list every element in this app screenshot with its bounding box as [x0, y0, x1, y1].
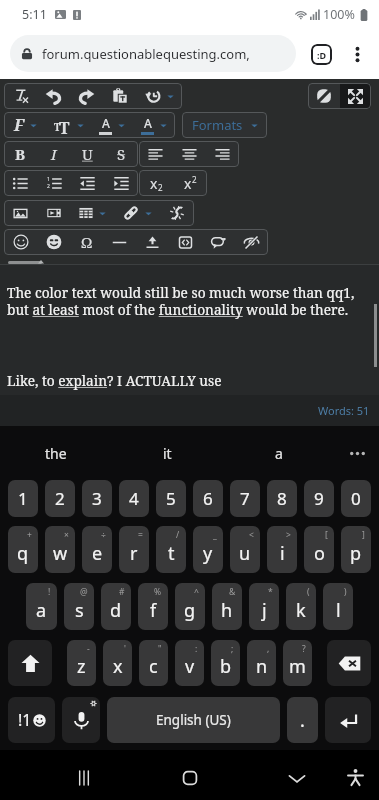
button[interactable]: Editor action	[70, 200, 115, 226]
button[interactable]: 7	[230, 480, 260, 517]
button[interactable]: Voice input	[62, 697, 100, 743]
button[interactable]: [	[304, 526, 334, 573]
button[interactable]: ,	[247, 640, 276, 686]
button[interactable]: Editor action	[136, 83, 182, 109]
button[interactable]: ;	[211, 640, 240, 686]
staticText: the	[45, 444, 67, 463]
button[interactable]: Editor action	[4, 141, 37, 167]
button[interactable]: English (US)	[107, 697, 280, 743]
button[interactable]: 5	[156, 480, 186, 517]
button[interactable]: ÷	[82, 526, 112, 573]
button[interactable]: ]	[341, 526, 371, 573]
button[interactable]: =	[119, 526, 149, 573]
button[interactable]: 1	[8, 480, 38, 517]
button[interactable]: :	[175, 640, 204, 686]
button[interactable]: )	[323, 583, 353, 630]
staticText: 4	[129, 487, 139, 510]
button[interactable]: More options	[341, 38, 373, 70]
button[interactable]: Home	[165, 753, 214, 800]
button[interactable]: 8	[267, 480, 297, 517]
button[interactable]: &	[212, 583, 242, 630]
staticText: 2	[192, 174, 197, 185]
button[interactable]: <	[230, 526, 260, 573]
button[interactable]: Editor action	[37, 170, 71, 196]
button[interactable]: Formats	[182, 112, 267, 138]
button[interactable]: +	[8, 526, 38, 573]
button[interactable]: Editor action	[206, 141, 239, 167]
button[interactable]: Fullscreen	[340, 83, 371, 109]
button[interactable]: -	[67, 640, 96, 686]
staticText: 2	[47, 183, 50, 190]
staticText: ,	[267, 643, 270, 655]
button[interactable]: Editor action	[37, 83, 70, 109]
button[interactable]: /	[156, 526, 186, 573]
button[interactable]: 3	[82, 480, 112, 517]
button[interactable]: Editor action	[103, 83, 136, 109]
button[interactable]: ^	[175, 583, 205, 630]
button[interactable]: Editor action	[37, 141, 71, 167]
button[interactable]: Editor action	[133, 112, 175, 138]
button[interactable]: Editor action	[160, 200, 194, 226]
button[interactable]: Back	[272, 753, 321, 800]
button[interactable]: Editor action	[104, 170, 138, 196]
button[interactable]: "	[139, 640, 168, 686]
button[interactable]: *	[249, 583, 279, 630]
button[interactable]: Enter	[325, 697, 371, 743]
button[interactable]: 9	[304, 480, 334, 517]
button[interactable]: .	[287, 697, 318, 743]
button[interactable]: Editor action	[70, 83, 103, 109]
button[interactable]: ?	[283, 640, 312, 686]
button[interactable]: Editor action	[173, 170, 207, 196]
button[interactable]: Remove formatting	[308, 83, 340, 109]
button[interactable]: 0	[341, 480, 371, 517]
button[interactable]: Editor action	[235, 229, 268, 255]
button[interactable]: forum.questionablequesting.com,	[10, 35, 296, 72]
button[interactable]: Editor action	[104, 141, 138, 167]
button[interactable]: Editor action	[37, 229, 70, 255]
button[interactable]: (	[286, 583, 316, 630]
button[interactable]: Editor action	[4, 170, 37, 196]
button[interactable]: Editor action	[4, 83, 37, 109]
button[interactable]: Editor action	[202, 229, 235, 255]
button[interactable]: >	[267, 526, 297, 573]
button[interactable]: Recents	[59, 753, 108, 800]
button[interactable]: Editor action	[169, 229, 202, 255]
button[interactable]: More suggestions	[335, 426, 379, 480]
button[interactable]: 6	[193, 480, 223, 517]
button[interactable]: Editor action	[71, 141, 104, 167]
button[interactable]: Editor action	[115, 200, 160, 226]
button[interactable]: Editor action	[37, 200, 70, 226]
button[interactable]: Shift	[8, 640, 52, 686]
button[interactable]: Symbols	[8, 697, 55, 743]
button[interactable]: Editor action	[136, 229, 169, 255]
button[interactable]: 4	[119, 480, 149, 517]
button[interactable]: Editor action	[90, 112, 133, 138]
staticText: g	[184, 598, 196, 623]
button[interactable]: Editor action	[4, 200, 37, 226]
button[interactable]: Editor action	[70, 229, 103, 255]
button[interactable]: Backspace	[327, 640, 371, 686]
button[interactable]: it	[111, 426, 223, 480]
button[interactable]: #	[101, 583, 131, 630]
button[interactable]: Editor action	[139, 170, 173, 196]
button[interactable]: %	[138, 583, 168, 630]
button[interactable]: Editor action	[47, 112, 90, 138]
button[interactable]: 2	[45, 480, 75, 517]
button[interactable]: a	[223, 426, 335, 480]
button[interactable]: ×	[45, 526, 75, 573]
staticText: !1	[18, 709, 32, 731]
button[interactable]: Editor action	[139, 141, 172, 167]
button[interactable]: the	[0, 426, 111, 480]
button[interactable]: Editor action	[172, 141, 206, 167]
staticText: A	[144, 115, 152, 131]
button[interactable]: !	[26, 583, 57, 630]
button[interactable]: Editor action	[4, 112, 47, 138]
button[interactable]: _	[193, 526, 223, 573]
button[interactable]: Reader mode	[305, 38, 337, 70]
button[interactable]: '	[103, 640, 132, 686]
button[interactable]: Editor action	[4, 229, 37, 255]
button[interactable]: Editor action	[103, 229, 136, 255]
button[interactable]: @	[64, 583, 94, 630]
button[interactable]: Editor action	[71, 170, 104, 196]
button[interactable]: Accessibility	[331, 753, 379, 800]
